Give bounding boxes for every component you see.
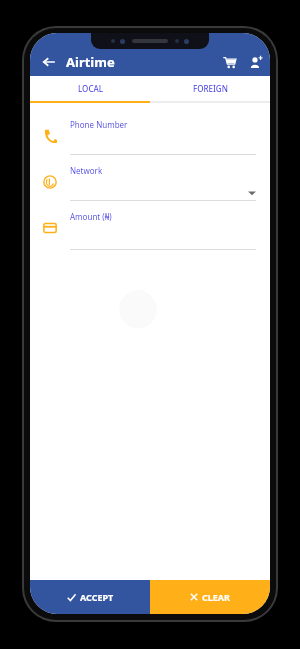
button[interactable]: Back — [36, 49, 62, 75]
button[interactable]: Amount (₦) — [30, 205, 270, 251]
staticText: Airtime — [66, 53, 115, 71]
staticText: CLEAR — [202, 591, 230, 603]
staticText: ACCEPT — [80, 591, 114, 603]
staticText: Amount (₦) — [70, 211, 112, 222]
button[interactable]: FOREIGN — [150, 76, 270, 101]
button[interactable]: Add contact — [242, 49, 268, 75]
button[interactable]: ACCEPT — [30, 580, 150, 614]
button[interactable]: Network — [30, 159, 270, 205]
staticText: Phone Number — [70, 119, 128, 130]
staticText: LOCAL — [78, 83, 103, 94]
button[interactable]: CLEAR — [150, 580, 270, 614]
staticText: FOREIGN — [193, 83, 228, 94]
staticText: Network — [70, 165, 103, 176]
button[interactable]: LOCAL — [30, 76, 150, 101]
button[interactable]: Cart — [216, 49, 242, 75]
button[interactable]: Phone Number — [30, 113, 270, 159]
